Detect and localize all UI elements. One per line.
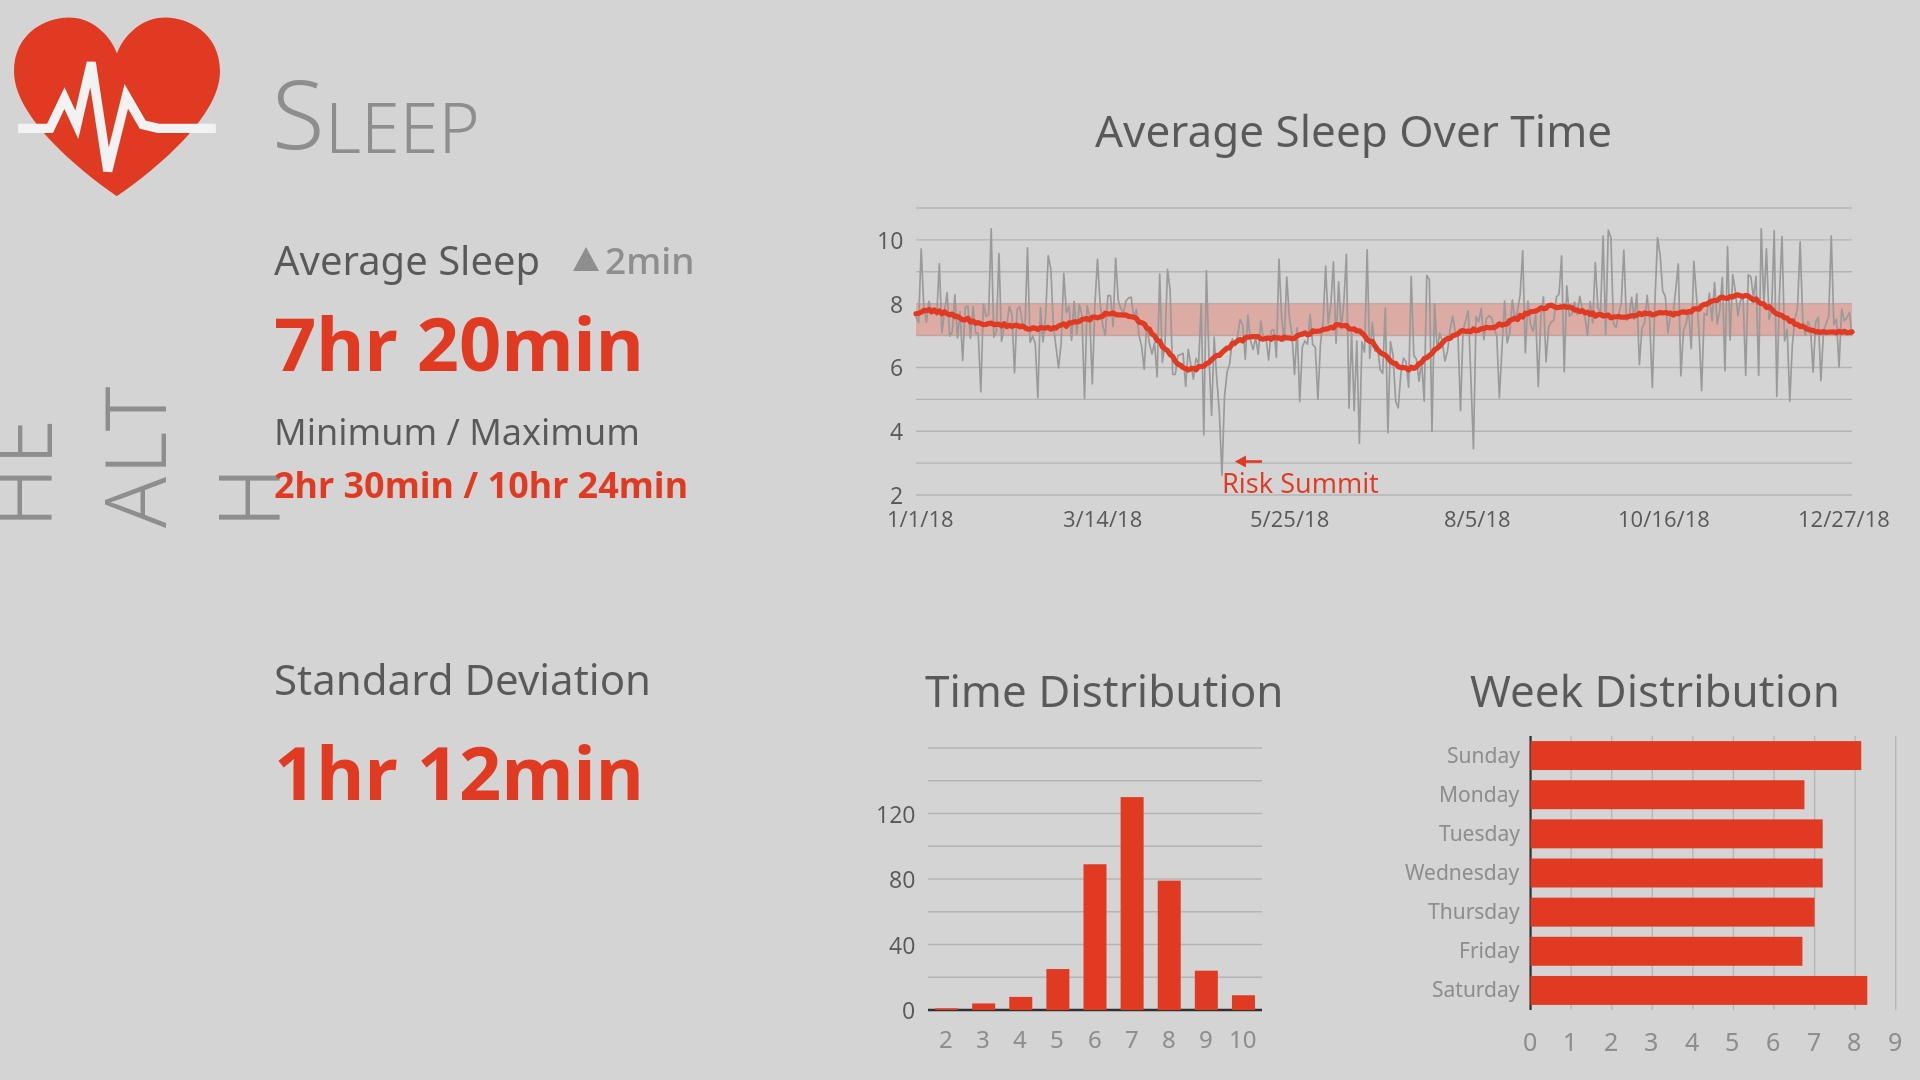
staticText: 9 — [1199, 1022, 1213, 1055]
staticText: 6 — [890, 351, 904, 382]
staticText: 2 — [939, 1022, 953, 1055]
staticText: Standard Deviation — [274, 650, 651, 707]
staticText: 0 — [902, 994, 916, 1025]
staticText: S — [272, 46, 325, 177]
staticText: 10/16/18 — [1618, 503, 1710, 533]
staticText: 8 — [1162, 1022, 1176, 1055]
staticText: 40 — [889, 929, 916, 960]
staticText: 120 — [876, 798, 916, 829]
staticText: 7 — [1807, 1024, 1822, 1058]
staticText: Friday — [1459, 936, 1520, 965]
staticText: 7hr 20min — [274, 292, 644, 393]
staticText: Sunday — [1447, 741, 1520, 770]
staticText: 5/25/18 — [1250, 503, 1330, 533]
staticText: 8 — [890, 288, 904, 319]
staticText: 2 — [1604, 1024, 1619, 1058]
staticText: 10 — [1229, 1022, 1257, 1055]
staticText: 6 — [1766, 1024, 1781, 1058]
staticText: 6 — [1088, 1022, 1102, 1055]
staticText: Tuesday — [1439, 819, 1520, 848]
staticText: 12/27/18 — [1798, 503, 1890, 533]
staticText: Time Distribution — [925, 660, 1284, 720]
staticText: Risk Summit — [1222, 464, 1379, 501]
staticText: 0 — [1523, 1024, 1538, 1058]
staticText: 5 — [1725, 1024, 1740, 1058]
staticText: Average Sleep — [274, 232, 541, 286]
staticText: 8/5/18 — [1444, 503, 1511, 533]
staticText: 4 — [1685, 1024, 1700, 1058]
staticText: 3 — [1644, 1024, 1659, 1058]
staticText: Monday — [1439, 780, 1520, 809]
staticText: Minimum / Maximum — [274, 407, 640, 456]
staticText: 8 — [1847, 1024, 1862, 1058]
staticText: 10 — [877, 224, 904, 255]
staticText: Thursday — [1428, 897, 1520, 926]
staticText: 7 — [1125, 1022, 1139, 1055]
staticText: Week Distribution — [1470, 660, 1840, 720]
staticText: 9 — [1888, 1024, 1903, 1058]
staticText: 5 — [1050, 1022, 1064, 1055]
staticText: 4 — [1013, 1022, 1027, 1055]
staticText: 2min — [605, 234, 695, 284]
staticText: 1hr 12min — [274, 721, 644, 822]
staticText: 2 — [890, 479, 904, 510]
button[interactable]: Health heart rate — [14, 18, 220, 196]
staticText: Saturday — [1432, 975, 1520, 1004]
staticText: 3 — [976, 1022, 990, 1055]
staticText: 1 — [1563, 1024, 1578, 1058]
staticText: Wednesday — [1405, 858, 1520, 887]
staticText: 4 — [890, 415, 904, 446]
staticText: HEALTH — [0, 378, 304, 528]
staticText: Average Sleep Over Time — [1095, 100, 1613, 160]
staticText: 1/1/18 — [887, 503, 954, 533]
staticText: 2hr 30min / 10hr 24min — [274, 460, 689, 509]
staticText: 80 — [889, 863, 916, 894]
staticText: 3/14/18 — [1063, 503, 1143, 533]
staticText: LEEP — [325, 78, 480, 173]
button[interactable]: S — [272, 46, 480, 177]
